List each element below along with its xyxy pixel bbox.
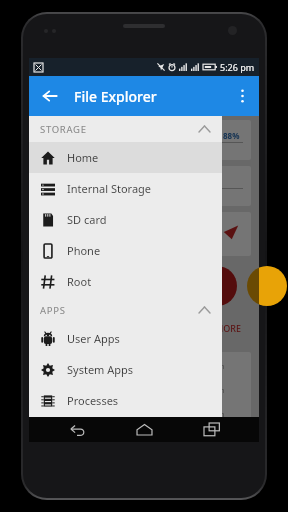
button[interactable]: APPS [29,297,222,323]
staticText: APPS [40,304,66,317]
button[interactable]: Internal Storage [29,173,222,204]
staticText: Phone [67,243,101,258]
button[interactable]: Back [57,417,97,442]
button[interactable]: Back [35,81,65,111]
staticText: Processes [67,393,119,408]
button[interactable]: Processes [29,385,222,416]
button[interactable]: User Apps [29,323,222,354]
staticText: Home [67,150,99,165]
staticText: SD card [67,212,107,227]
staticText: MORE [215,322,242,334]
staticText: STORAGE [40,123,87,136]
staticText: 5:26 pm [220,61,255,73]
button[interactable]: STORAGE [29,116,222,142]
staticText: Item [209,410,225,420]
staticText: Root [67,274,92,289]
button[interactable]: SD card [29,204,222,235]
staticText: User Apps [67,331,120,346]
button[interactable]: Root [29,266,222,297]
button[interactable]: Home [124,417,164,442]
staticText: Internal Storage [67,181,152,196]
button[interactable]: Recent apps [192,417,232,442]
staticText: File Explorer [74,87,157,106]
button[interactable]: Phone [29,235,222,266]
staticText: System Apps [67,362,134,377]
staticText: Item [209,386,225,396]
button[interactable]: System Apps [29,354,222,385]
button[interactable]: More options [228,82,256,110]
staticText: Item [209,362,225,372]
staticText: 88% [223,130,240,141]
button[interactable]: Home [29,142,222,173]
